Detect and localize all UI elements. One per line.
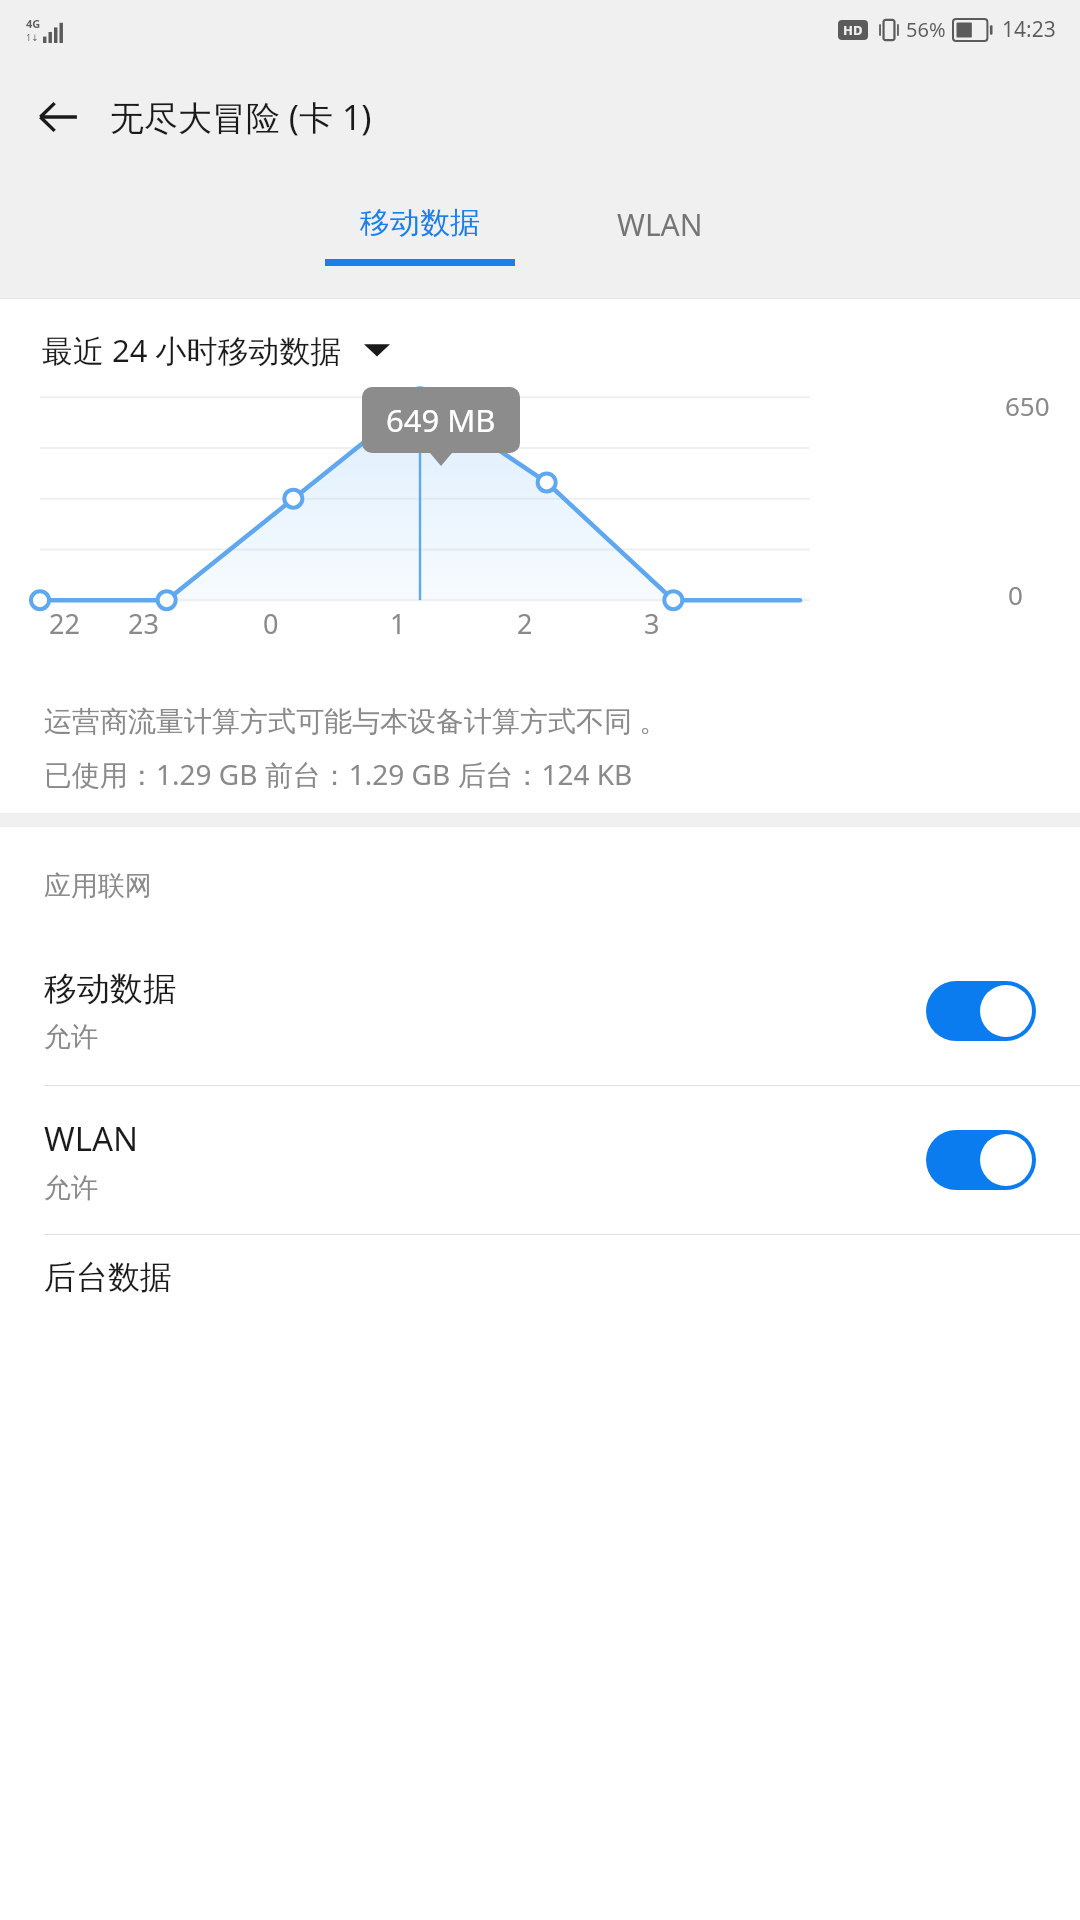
staticText: 1 <box>390 605 406 642</box>
staticText: 后台数据 <box>44 1257 172 1297</box>
staticText: 22 <box>49 605 80 642</box>
staticText: 0 <box>1008 577 1023 612</box>
staticText: 2 <box>517 605 533 642</box>
staticText: 应用联网 <box>44 869 152 903</box>
staticText: 1↓ <box>26 31 39 43</box>
staticText: 已使用：1.29 GB 前台：1.29 GB 后台：124 KB <box>44 755 633 793</box>
staticText: 56% <box>906 16 946 43</box>
staticText: 允许 <box>44 1020 98 1054</box>
button[interactable]: WLAN <box>0 1086 1080 1234</box>
staticText: 允许 <box>44 1171 98 1205</box>
staticText: 14:23 <box>1002 15 1056 44</box>
button[interactable]: WLAN <box>540 176 780 245</box>
staticText: 运营商流量计算方式可能与本设备计算方式不同 。 <box>44 701 668 739</box>
staticText: 3 <box>644 605 660 642</box>
staticText: 4G <box>26 16 41 31</box>
button[interactable]: 最近 24 小时移动数据 <box>42 329 390 371</box>
staticText: 649 MB <box>386 399 496 441</box>
staticText: 23 <box>128 605 159 642</box>
staticText: WLAN <box>617 204 703 245</box>
staticText: 移动数据 <box>44 968 176 1010</box>
button[interactable]: Back <box>22 81 94 153</box>
staticText: 650 <box>1005 388 1050 423</box>
button[interactable]: 移动数据 <box>300 176 540 266</box>
staticText: WLAN <box>44 1116 139 1161</box>
staticText: 无尽大冒险 (卡 1) <box>110 94 372 140</box>
staticText: 最近 24 小时移动数据 <box>42 329 342 371</box>
staticText: 0 <box>263 605 279 642</box>
staticText: HD <box>843 21 863 39</box>
staticText: 移动数据 <box>360 204 480 242</box>
button[interactable]: 移动数据 <box>0 937 1080 1085</box>
